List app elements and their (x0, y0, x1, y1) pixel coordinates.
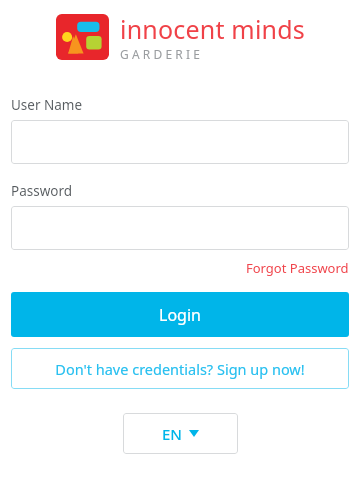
button[interactable] (11, 120, 349, 164)
staticText: User Name (11, 96, 83, 114)
button[interactable]: Forgot Password (246, 259, 349, 277)
staticText: GARDERIE (120, 46, 204, 62)
staticText: innocent minds (120, 12, 305, 46)
staticText: EN (162, 424, 182, 444)
staticText: Forgot Password (246, 259, 349, 277)
staticText: Don't have credentials? Sign up now! (55, 359, 305, 379)
button[interactable]: Login (11, 292, 349, 337)
button[interactable] (11, 206, 349, 250)
staticText: Login (159, 304, 201, 326)
button[interactable]: Select language English (123, 413, 238, 454)
button[interactable]: Don't have credentials? Sign up now! (11, 348, 349, 389)
staticText: Password (11, 182, 73, 200)
